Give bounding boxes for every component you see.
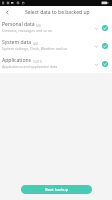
staticText: 4/4 [33, 42, 38, 46]
button[interactable]: Selected [102, 43, 108, 49]
button[interactable]: Back [0, 6, 14, 19]
staticText: 5/6 [36, 24, 41, 28]
staticText: Select data to be backed up [25, 9, 90, 16]
staticText: Applications [2, 57, 32, 64]
button[interactable]: System data [0, 37, 112, 55]
staticText: System data [2, 39, 32, 46]
staticText: Applications and application data [2, 64, 58, 69]
staticText: Contacts, messages and so on [2, 28, 53, 33]
staticText: Start backup [45, 187, 69, 192]
button[interactable]: Selected [102, 25, 108, 31]
button[interactable]: Applications [0, 55, 112, 73]
button[interactable]: Selected [102, 61, 108, 67]
button[interactable]: Start backup [21, 185, 92, 194]
button[interactable]: Personal data [0, 19, 112, 37]
staticText: 13/13 [33, 60, 42, 64]
staticText: System settings, Clock, Weather and so [2, 46, 68, 51]
staticText: Personal data [2, 21, 35, 28]
